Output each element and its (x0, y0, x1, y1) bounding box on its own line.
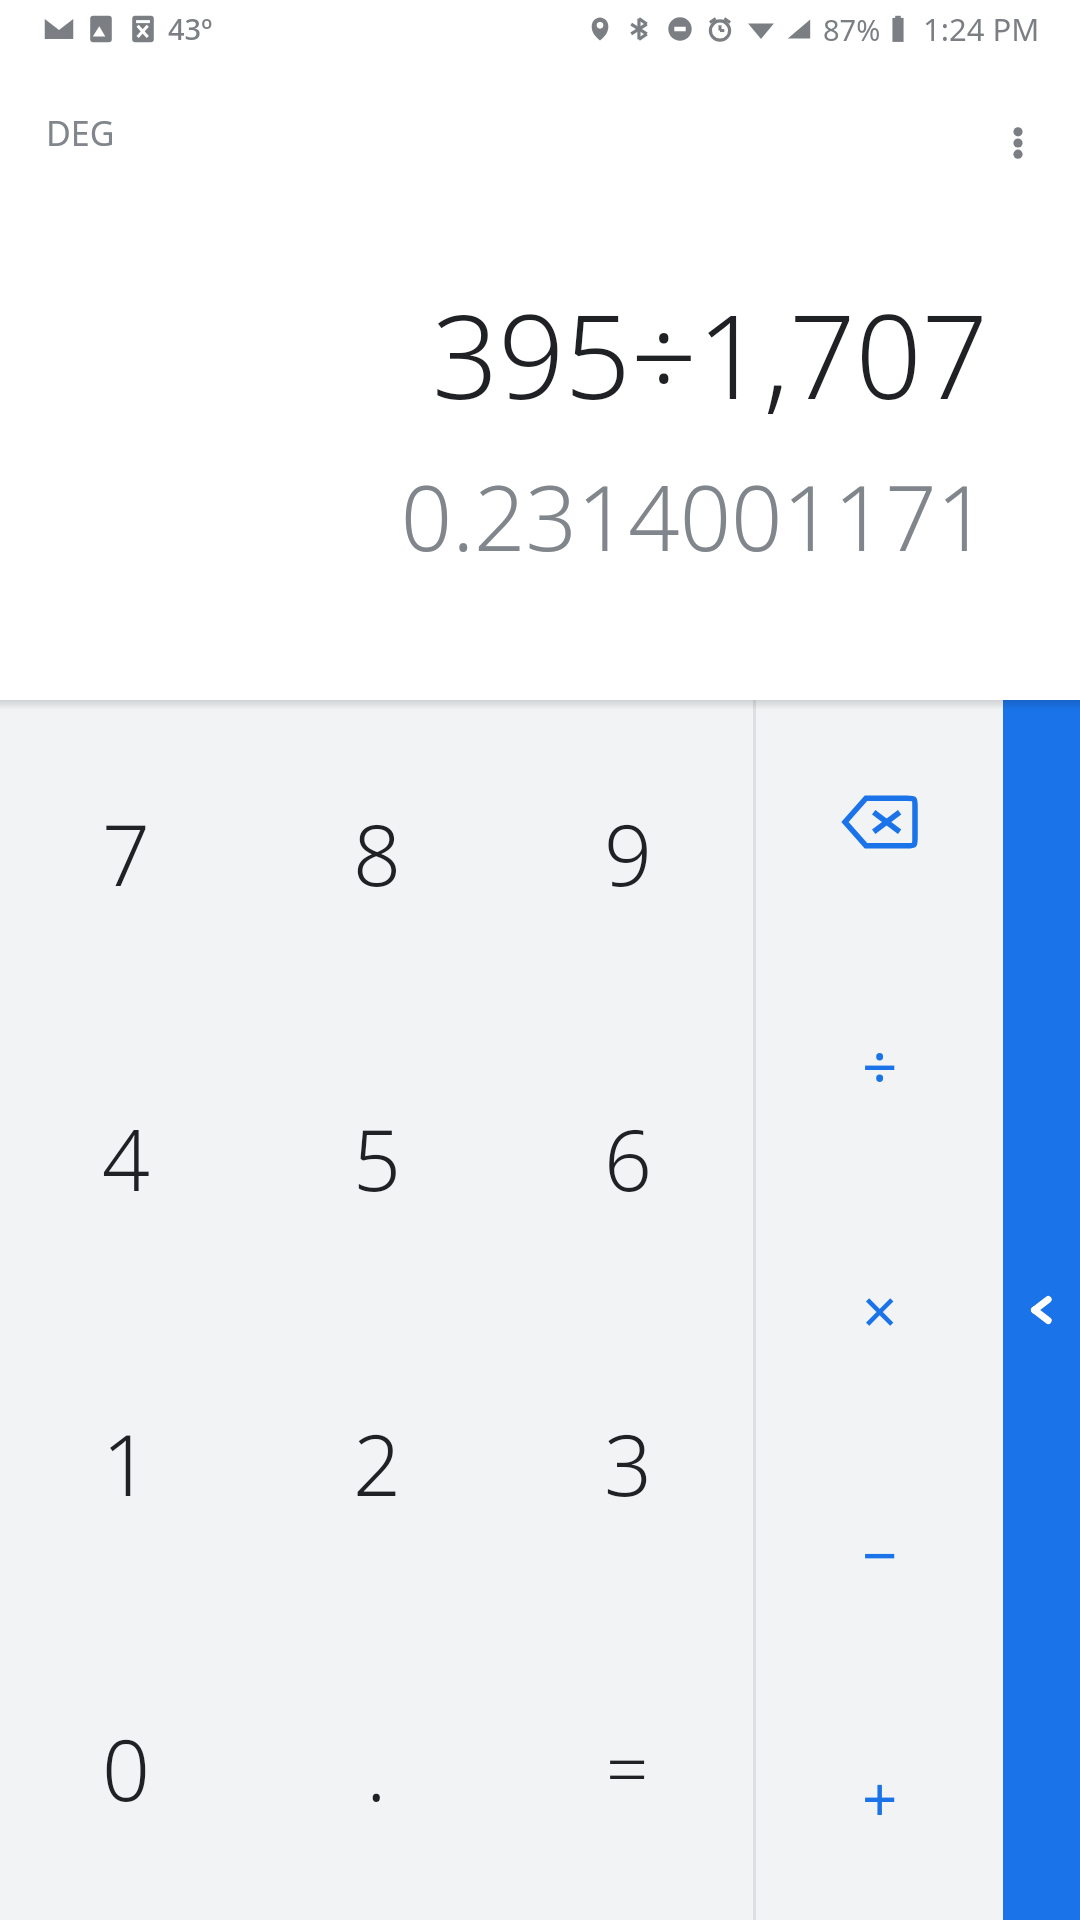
button[interactable]: − (756, 1432, 1003, 1676)
button[interactable]: 9 (502, 700, 753, 1005)
button[interactable]: 6 (502, 1005, 753, 1310)
button[interactable]: 4 (0, 1005, 251, 1310)
staticText: = (606, 1717, 649, 1818)
staticText: 0.2314001171 (400, 455, 988, 578)
button[interactable]: 1 (0, 1310, 251, 1615)
staticText: 1:24 PM (923, 8, 1040, 50)
button[interactable]: = (502, 1615, 753, 1920)
staticText: 5 (353, 1101, 401, 1215)
button[interactable]: × (756, 1188, 1003, 1432)
staticText: ÷ (862, 1024, 898, 1108)
staticText: 87% (823, 10, 881, 49)
button[interactable]: DEG (46, 110, 115, 156)
button[interactable]: 2 (251, 1310, 502, 1615)
button[interactable]: 3 (502, 1310, 753, 1615)
staticText: 8 (353, 796, 401, 910)
button[interactable]: 8 (251, 700, 502, 1005)
button[interactable]: . (251, 1615, 502, 1920)
button[interactable]: 5 (251, 1005, 502, 1310)
staticText: 0 (102, 1711, 150, 1825)
button[interactable]: ÷ (756, 944, 1003, 1188)
staticText: 2 (353, 1406, 401, 1520)
button[interactable]: Delete (756, 700, 1003, 944)
staticText: 9 (604, 796, 652, 910)
staticText: − (862, 1512, 898, 1596)
staticText: 395÷1,707 (432, 275, 988, 433)
staticText: 3 (604, 1406, 652, 1520)
staticText: + (862, 1756, 898, 1840)
staticText: × (862, 1268, 898, 1352)
button[interactable]: + (756, 1676, 1003, 1920)
staticText: 6 (604, 1101, 652, 1215)
button[interactable]: 0 (0, 1615, 251, 1920)
staticText: 43º (168, 9, 213, 48)
staticText: . (366, 1711, 387, 1825)
button[interactable]: 7 (0, 700, 251, 1005)
button[interactable]: More options (976, 101, 1060, 185)
staticText: 4 (102, 1101, 150, 1215)
staticText: 7 (102, 796, 150, 910)
button[interactable]: Open advanced pad (1003, 700, 1080, 1920)
staticText: 1 (102, 1406, 150, 1520)
